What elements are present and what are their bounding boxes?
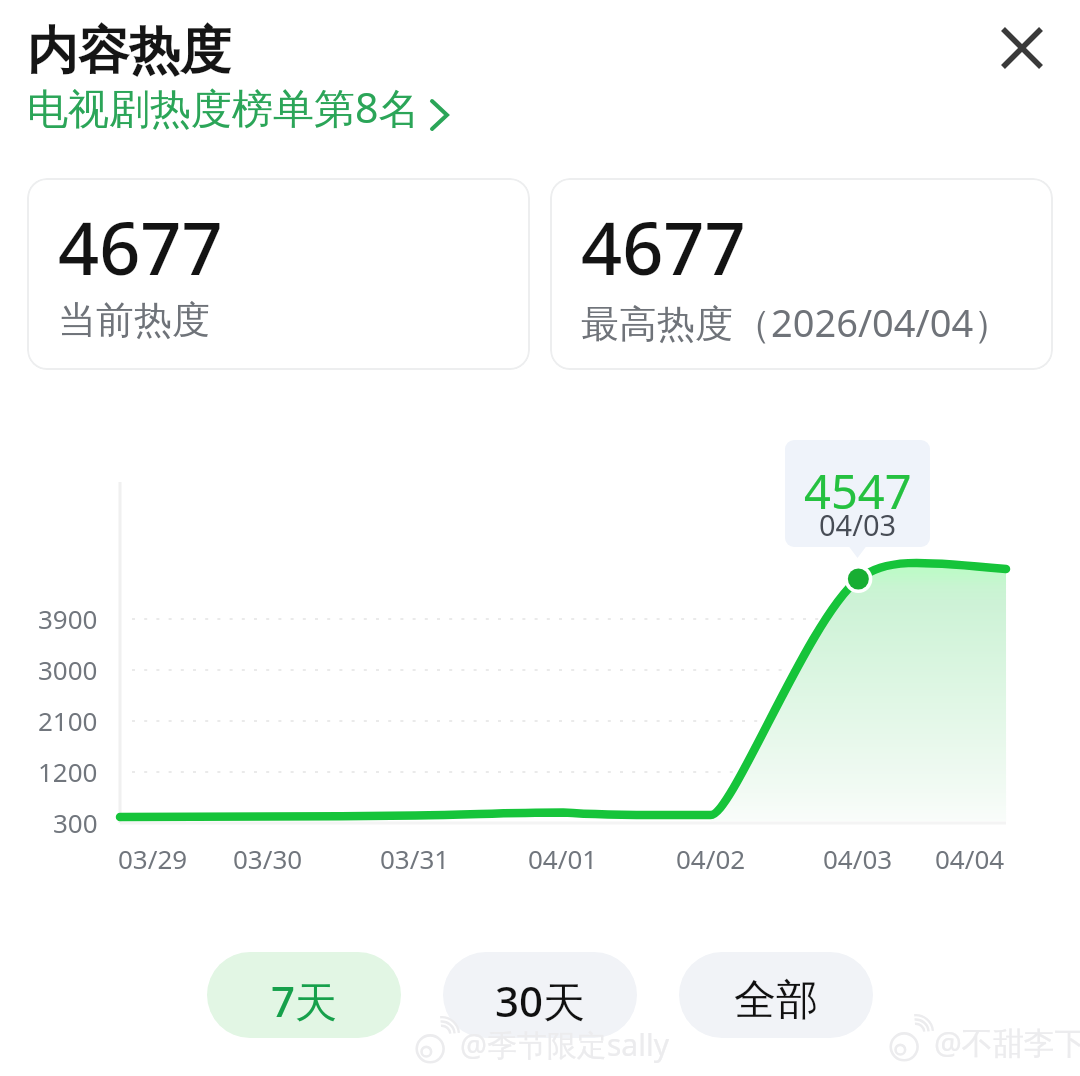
staticText: 4677 — [581, 198, 746, 296]
staticText: 4677 — [58, 198, 223, 296]
staticText: 2100 — [38, 703, 98, 738]
staticText: 04/04 — [935, 841, 1005, 876]
staticText: 03/31 — [380, 841, 450, 876]
staticText: 当前热度 — [58, 296, 210, 344]
staticText: 内容热度 — [27, 19, 231, 83]
button[interactable]: 4677 — [27, 178, 530, 370]
staticText: 04/01 — [528, 841, 598, 876]
staticText: 7天 — [271, 972, 338, 1029]
button[interactable]: Close — [994, 20, 1050, 76]
staticText: 4547 — [804, 459, 912, 523]
staticText: 3000 — [38, 652, 98, 687]
staticText: 最高热度（2026/04/04） — [581, 296, 1012, 348]
staticText: 03/30 — [233, 841, 303, 876]
button[interactable]: 电视剧热度榜单第8名 — [27, 79, 449, 135]
staticText: 3900 — [38, 601, 98, 636]
staticText: 03/29 — [118, 841, 188, 876]
staticText: 04/02 — [676, 841, 746, 876]
staticText: 04/03 — [819, 505, 897, 544]
button[interactable]: 全部 — [679, 952, 873, 1038]
staticText: 电视剧热度榜单第8名 — [27, 79, 420, 135]
button[interactable]: 7天 — [207, 952, 401, 1038]
staticText: @不甜李下 — [934, 1021, 1080, 1063]
staticText: 04/03 — [823, 841, 893, 876]
staticText: 全部 — [734, 974, 818, 1027]
button[interactable]: 30天 — [443, 952, 637, 1038]
staticText: 300 — [53, 805, 98, 840]
staticText: @季节限定sally — [460, 1024, 669, 1065]
staticText: 1200 — [38, 754, 98, 789]
staticText: 30天 — [495, 972, 586, 1029]
button[interactable]: 4677 — [550, 178, 1053, 370]
